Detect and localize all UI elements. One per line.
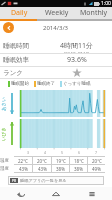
staticText: あさい — [1, 97, 7, 111]
staticText: (02:58~07:10) — [64, 51, 90, 54]
staticText: 38% — [56, 166, 65, 172]
button[interactable]: Daily — [0, 7, 38, 19]
staticText: 4 — [44, 150, 47, 155]
staticText: 19°C — [56, 158, 66, 164]
staticText: 43% — [38, 166, 47, 172]
button[interactable]: Home — [41, 187, 71, 200]
staticText: 18°C — [74, 158, 84, 164]
staticText: 43% — [19, 166, 28, 172]
staticText: 睡眠開始 — [11, 81, 29, 87]
staticText: 93.6% — [67, 55, 87, 65]
staticText: 睡眠終了 — [37, 81, 55, 87]
staticText: 7 — [95, 150, 98, 155]
staticText: Daily — [11, 8, 28, 18]
staticText: 20°C — [92, 158, 102, 164]
staticText: 1:00 — [101, 0, 111, 7]
staticText: 睡眠効率 — [3, 56, 29, 64]
staticText: 3 — [27, 150, 30, 155]
button[interactable]: PR — [8, 176, 104, 185]
staticText: 温度 — [0, 158, 9, 164]
staticText: 38% — [74, 166, 83, 172]
staticText: Monthly — [80, 8, 108, 18]
staticText: 4時間11分 — [60, 41, 94, 51]
staticText: 6 — [78, 150, 81, 155]
staticText: 20°C — [37, 158, 47, 164]
button[interactable]: Previous day — [3, 22, 14, 33]
staticText: 湿度 — [0, 166, 9, 172]
staticText: いびき — [1, 127, 7, 141]
button[interactable]: Monthly — [75, 7, 112, 19]
button[interactable]: Back — [6, 187, 36, 200]
button[interactable]: Recent apps — [77, 187, 107, 200]
staticText: Weekly — [45, 8, 69, 18]
staticText: 49% — [92, 166, 101, 172]
staticText: 睡眠時間 — [3, 42, 29, 50]
staticText: 睡眠アプリの一覧を見る — [20, 178, 67, 183]
staticText: PR — [12, 179, 16, 183]
staticText: ぐっすり睡眠 — [63, 81, 91, 87]
button[interactable]: Weekly — [38, 7, 75, 19]
staticText: 5 — [61, 150, 64, 155]
staticText: 22°C — [18, 158, 28, 164]
staticText: 2014/3/3 — [43, 24, 69, 32]
staticText: ランク — [3, 69, 23, 77]
